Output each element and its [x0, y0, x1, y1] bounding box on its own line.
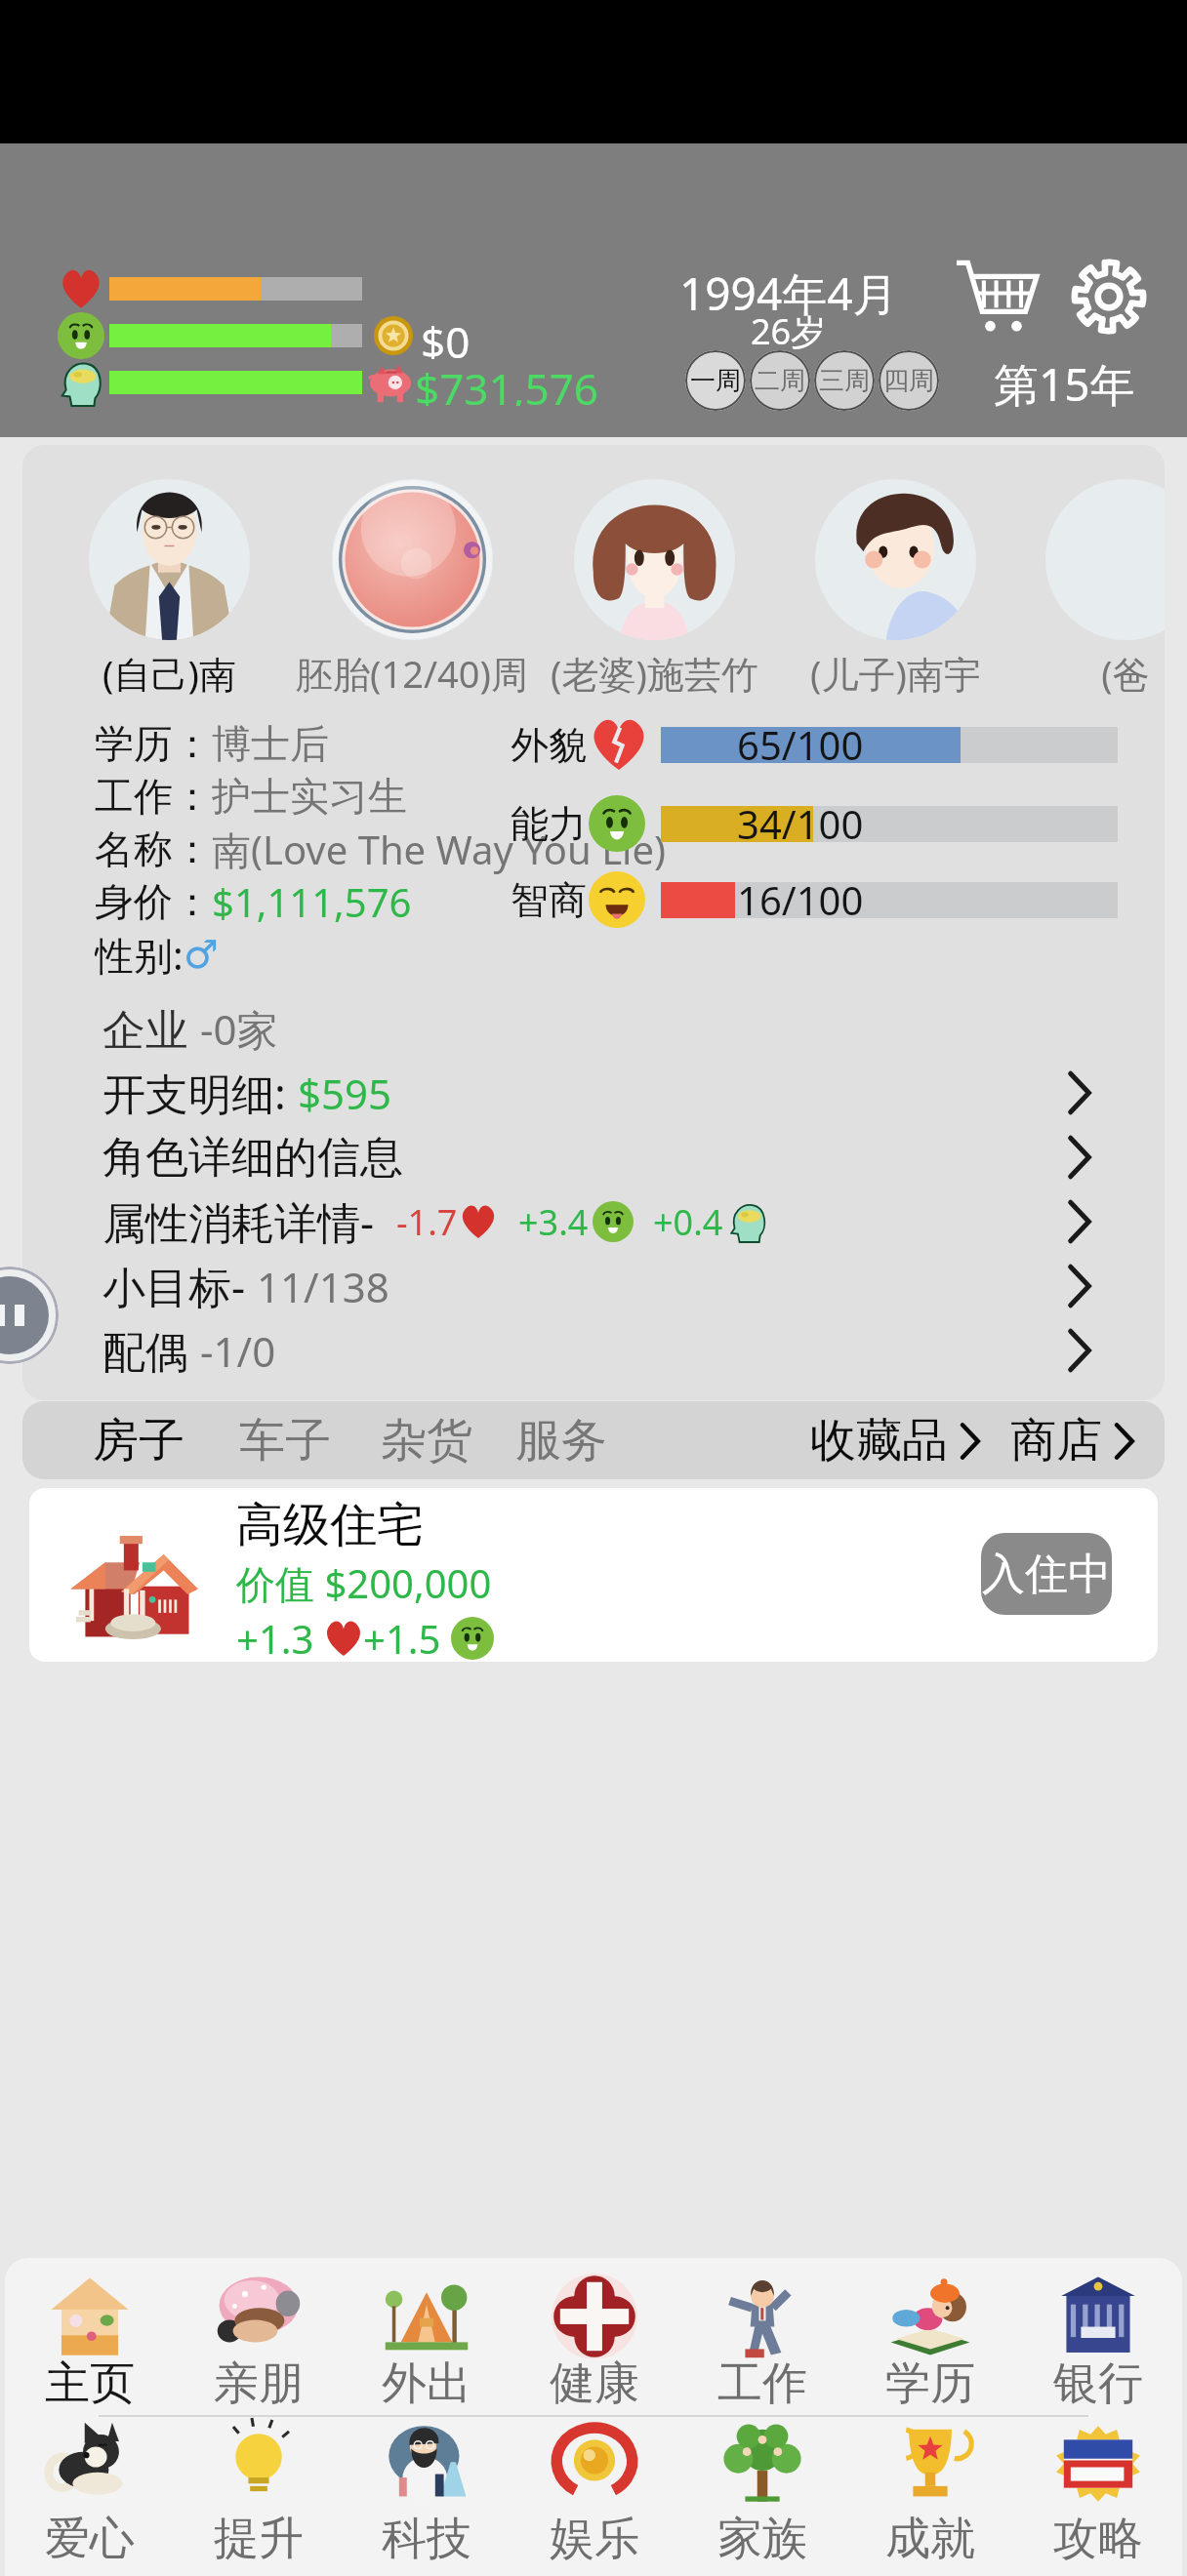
staticText: 工作	[717, 2355, 807, 2412]
button[interactable]: 一周	[685, 350, 746, 411]
button[interactable]: 商店	[1010, 1412, 1145, 1469]
staticText: 娱乐	[550, 2511, 639, 2567]
staticText: 主页	[45, 2355, 135, 2412]
staticText: +0.4	[653, 1198, 723, 1246]
button[interactable]: 二周	[750, 350, 810, 411]
staticText: $0	[421, 312, 471, 359]
button[interactable]: 配偶	[102, 1318, 1126, 1383]
button[interactable]: 高级住宅	[29, 1488, 1158, 1662]
staticText: 博士后	[212, 719, 329, 768]
staticText: 第15年	[994, 353, 1135, 415]
button[interactable]: 工作	[678, 2258, 846, 2415]
button[interactable]: 房子	[93, 1412, 184, 1469]
button[interactable]: 四周	[879, 350, 939, 411]
staticText: ♂	[184, 932, 219, 978]
button[interactable]: 属性消耗详情-	[102, 1189, 1126, 1254]
button[interactable]: 收藏品	[810, 1412, 991, 1469]
button[interactable]: 胚胎(12/40)周	[293, 479, 531, 699]
staticText: 小目标-	[102, 1257, 257, 1315]
staticText: (老婆)施芸竹	[551, 648, 758, 699]
staticText: 攻略	[1053, 2511, 1143, 2567]
staticText: 身价：	[95, 877, 212, 926]
staticText: 护士实习生	[212, 772, 407, 821]
staticText: 价值 $200,000	[236, 1556, 492, 1610]
staticText: 配偶	[102, 1321, 200, 1380]
staticText: -0家	[200, 1001, 278, 1057]
button[interactable]: 小目标-	[102, 1254, 1126, 1318]
staticText: (爸	[1101, 648, 1150, 699]
button[interactable]: 家族	[678, 2417, 846, 2576]
button[interactable]: 健康	[511, 2258, 678, 2415]
button[interactable]: 服务	[515, 1412, 607, 1469]
staticText: 家族	[717, 2511, 807, 2567]
staticText: 26岁	[751, 307, 827, 355]
staticText: $731,576	[415, 359, 598, 406]
staticText: 能力	[511, 800, 587, 848]
button[interactable]: 学历	[846, 2258, 1014, 2415]
button[interactable]: 娱乐	[511, 2417, 678, 2576]
button[interactable]: (老婆)施芸竹	[535, 479, 773, 699]
staticText: 亲朋	[214, 2355, 304, 2412]
button[interactable]: 攻略	[1014, 2417, 1182, 2576]
staticText: 胚胎(12/40)周	[296, 648, 528, 699]
button[interactable]: 主页	[5, 2258, 174, 2415]
button[interactable]: 企业	[102, 996, 1126, 1061]
staticText: 角色详细的信息	[102, 1131, 403, 1185]
staticText: 企业	[102, 999, 200, 1058]
staticText: 学历	[885, 2355, 975, 2412]
staticText: 外出	[382, 2355, 471, 2412]
button[interactable]: Shop	[954, 253, 1040, 339]
button[interactable]: 提升	[174, 2417, 343, 2576]
staticText: 高级住宅	[236, 1496, 424, 1554]
button[interactable]: 亲朋	[174, 2258, 343, 2415]
staticText: 性别:	[95, 928, 184, 981]
staticText: 科技	[382, 2511, 471, 2567]
staticText: 提升	[214, 2511, 304, 2567]
staticText: 智商	[511, 876, 587, 924]
staticText: -1.7	[396, 1198, 458, 1246]
button[interactable]: (儿子)南宇	[776, 479, 1014, 699]
staticText: 三周	[819, 365, 870, 397]
staticText: 银行	[1053, 2355, 1143, 2412]
staticText: +1.3	[236, 1612, 324, 1662]
button[interactable]: 角色详细的信息	[102, 1125, 1126, 1189]
button[interactable]: (自己)南	[50, 479, 288, 699]
button[interactable]: 爱心	[5, 2417, 174, 2576]
staticText: 65/100	[737, 718, 864, 771]
button[interactable]: 外出	[343, 2258, 511, 2415]
staticText: +1.5	[363, 1612, 451, 1662]
staticText: 健康	[550, 2355, 639, 2412]
staticText: 车子	[239, 1412, 331, 1469]
staticText: (自己)南	[102, 648, 236, 699]
staticText: 入住中	[982, 1548, 1111, 1601]
button[interactable]: 杂货	[381, 1412, 472, 1469]
staticText: 学历：	[95, 719, 212, 768]
staticText: -1/0	[200, 1323, 276, 1379]
staticText: 南(Love The Way You Lie)	[212, 823, 666, 875]
staticText: $595	[298, 1066, 392, 1121]
staticText: 16/100	[737, 873, 864, 926]
staticText: (儿子)南宇	[810, 648, 981, 699]
button[interactable]: 科技	[343, 2417, 511, 2576]
staticText: 名称：	[95, 825, 212, 873]
staticText: +3.4	[518, 1198, 589, 1246]
staticText: 商店	[1010, 1412, 1102, 1469]
button[interactable]: Settings	[1069, 257, 1149, 337]
staticText: 属性消耗详情-	[102, 1192, 375, 1251]
button[interactable]: 三周	[814, 350, 875, 411]
button[interactable]: 开支明细:	[102, 1061, 1126, 1125]
staticText: 房子	[93, 1412, 184, 1469]
staticText: 工作：	[95, 772, 212, 821]
staticText: 收藏品	[810, 1412, 948, 1469]
button[interactable]: Pause	[0, 1267, 59, 1364]
staticText: 服务	[515, 1412, 607, 1469]
button[interactable]: 车子	[239, 1412, 331, 1469]
staticText: $1,111,576	[212, 875, 412, 928]
button[interactable]: 银行	[1014, 2258, 1182, 2415]
staticText: 外貌	[511, 721, 587, 769]
staticText: 成就	[885, 2511, 975, 2567]
button[interactable]: (爸	[1006, 479, 1165, 699]
button[interactable]: 成就	[846, 2417, 1014, 2576]
button[interactable]: 入住中	[981, 1533, 1112, 1615]
staticText: 二周	[755, 365, 805, 397]
